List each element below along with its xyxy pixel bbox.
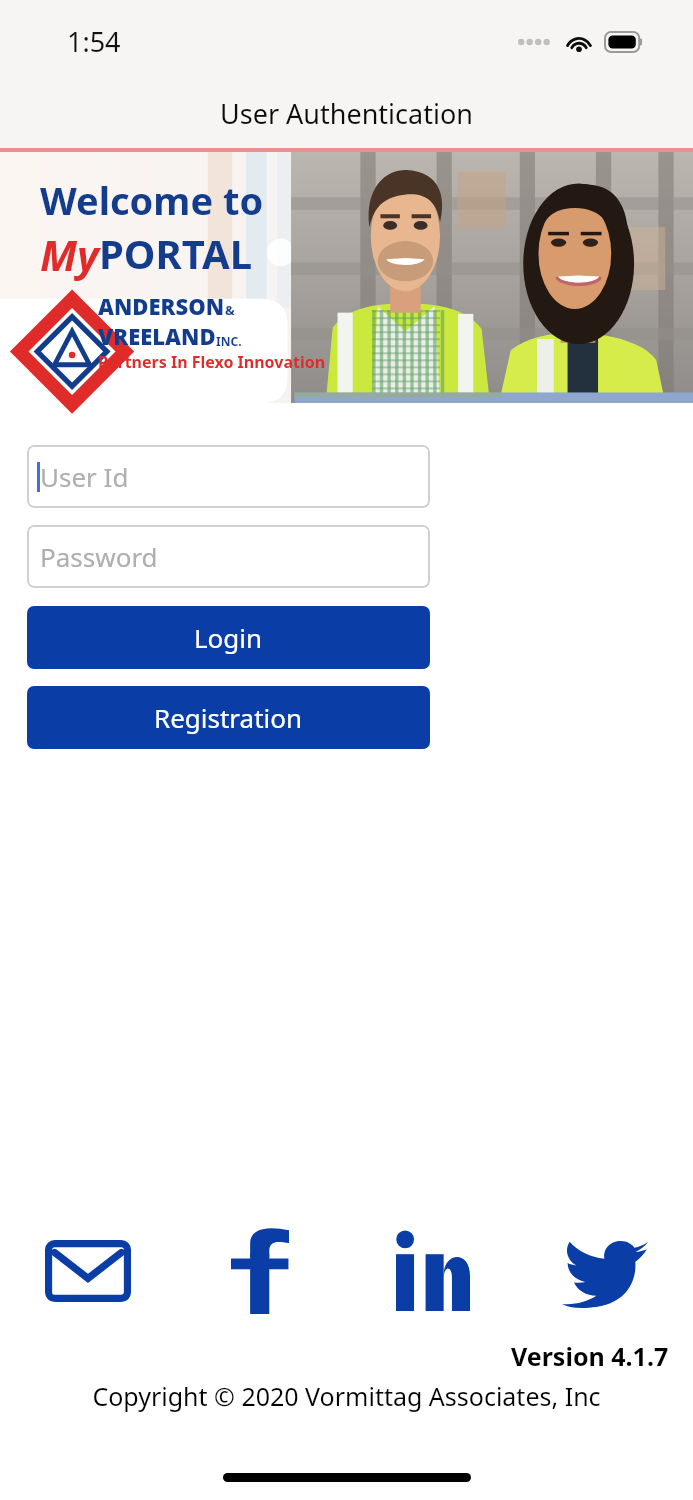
button[interactable]: Email (40, 1223, 136, 1319)
staticText: Copyright © 2020 Vormittag Associates, I… (24, 1379, 669, 1413)
staticText: INC. (216, 333, 242, 349)
button[interactable]: Registration (27, 686, 430, 749)
button[interactable]: Facebook (212, 1223, 308, 1319)
staticText: User Id (40, 459, 129, 494)
staticText: Registration (154, 700, 303, 735)
button[interactable]: LinkedIn (385, 1223, 481, 1319)
staticText: Welcome to (40, 174, 264, 226)
staticText: User Authentication (220, 95, 473, 132)
button[interactable]: Twitter (557, 1223, 653, 1319)
staticText: Version 4.1.7 (511, 1339, 669, 1373)
staticText: PORTAL (99, 226, 253, 280)
staticText: My (40, 226, 99, 283)
staticText: ANDERSON (98, 291, 225, 321)
button[interactable]: User Id (27, 445, 430, 508)
button[interactable]: Password (27, 525, 430, 588)
staticText: VREELAND (98, 321, 216, 351)
staticText: Password (40, 539, 158, 574)
button[interactable]: Login (27, 606, 430, 669)
staticText: Partners In Flexo Innovation (98, 351, 326, 373)
staticText: Login (194, 620, 263, 655)
staticText: 1:54 (67, 23, 121, 60)
staticText: & (225, 301, 235, 319)
